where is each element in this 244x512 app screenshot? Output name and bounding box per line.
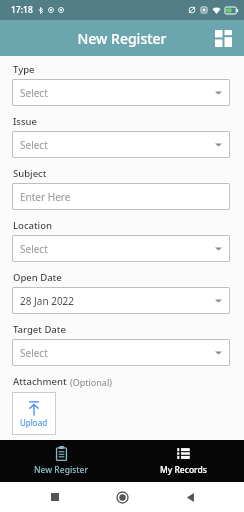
button[interactable]: Select	[12, 131, 230, 158]
button[interactable]: New Register	[0, 440, 122, 482]
button[interactable]: Upload attachment	[12, 392, 56, 435]
staticText: Type	[13, 63, 35, 76]
button[interactable]: Select	[12, 235, 230, 262]
staticText: 17:18	[11, 4, 33, 16]
staticText: New Register	[34, 464, 89, 476]
button[interactable]: 28 Jan 2022	[12, 287, 230, 314]
staticText: Enter Here	[20, 190, 71, 204]
staticText: Location	[13, 219, 52, 232]
staticText: Attachment	[13, 375, 67, 388]
button[interactable]: My Records	[122, 440, 244, 482]
staticText: Open Date	[13, 271, 62, 284]
staticText: Select	[20, 86, 48, 100]
button[interactable]: Back	[177, 484, 203, 510]
staticText: My Records	[160, 464, 207, 476]
button[interactable]: Home	[109, 484, 135, 510]
staticText: (Optional)	[70, 376, 112, 388]
button[interactable]: Recent apps	[42, 484, 68, 510]
button[interactable]: Dashboard	[210, 25, 236, 51]
button[interactable]: Enter Here	[12, 183, 230, 210]
staticText: 28 Jan 2022	[20, 294, 75, 308]
staticText: Upload	[20, 417, 48, 428]
staticText: Select	[20, 242, 48, 256]
staticText: Subject	[13, 167, 47, 180]
staticText: Select	[20, 346, 48, 360]
button[interactable]: Select	[12, 79, 230, 106]
staticText: Select	[20, 138, 48, 152]
staticText: New Register	[77, 29, 167, 48]
staticText: Issue	[13, 115, 38, 128]
staticText: Target Date	[13, 323, 66, 336]
button[interactable]: Select	[12, 339, 230, 366]
